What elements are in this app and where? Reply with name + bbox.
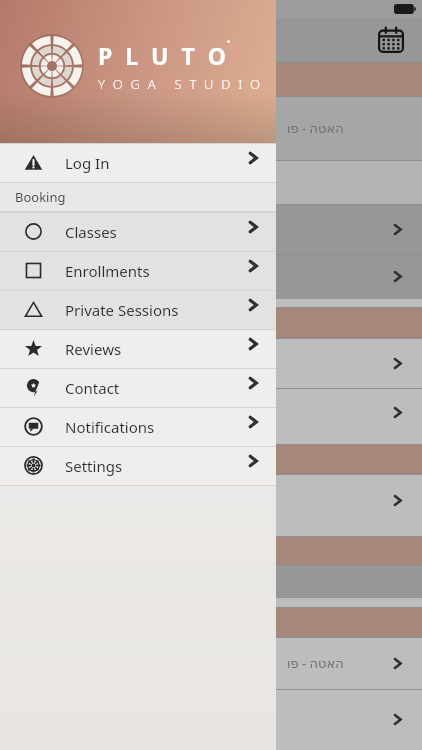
button[interactable] (0, 62, 422, 96)
button[interactable]: Contact (0, 368, 276, 407)
staticText: Private Sessions (65, 300, 179, 320)
button[interactable] (0, 565, 422, 598)
staticText: Booking (15, 188, 66, 206)
button[interactable] (0, 436, 422, 444)
button[interactable]: האטה - פו (0, 96, 422, 160)
button[interactable] (0, 160, 422, 204)
staticText: Y O G A S T U D I O (98, 75, 263, 93)
button[interactable] (0, 607, 422, 637)
button[interactable] (0, 204, 422, 254)
button[interactable] (0, 299, 422, 307)
button[interactable] (0, 598, 422, 607)
button[interactable] (0, 388, 422, 436)
staticText: Classes (65, 222, 117, 242)
staticText: Log In (65, 153, 110, 173)
button[interactable] (0, 536, 422, 565)
button[interactable]: Notifications (0, 407, 276, 446)
button[interactable] (0, 338, 422, 388)
button[interactable]: Enrollments (0, 251, 276, 290)
button[interactable]: Private Sessions (0, 290, 276, 329)
button[interactable] (0, 444, 422, 474)
staticText: Reviews (65, 339, 122, 359)
button[interactable]: Calendar (374, 23, 408, 57)
staticText: Enrollments (65, 261, 150, 281)
button[interactable]: Log In (0, 143, 276, 182)
staticText: האטה - פו (287, 119, 344, 137)
button[interactable] (0, 689, 422, 749)
button[interactable]: Reviews (0, 329, 276, 368)
button[interactable]: האטה - פו (0, 637, 422, 689)
button[interactable] (0, 526, 422, 536)
staticText: Notifications (65, 417, 155, 437)
staticText: P L U T O (98, 40, 230, 71)
staticText: Settings (65, 456, 123, 476)
button[interactable]: Classes (0, 212, 276, 251)
button[interactable] (0, 474, 422, 526)
staticText: האטה - פו (287, 654, 344, 672)
button[interactable] (0, 307, 422, 338)
staticText: Contact (65, 378, 120, 398)
button[interactable]: Settings (0, 446, 276, 485)
button[interactable] (0, 254, 422, 299)
